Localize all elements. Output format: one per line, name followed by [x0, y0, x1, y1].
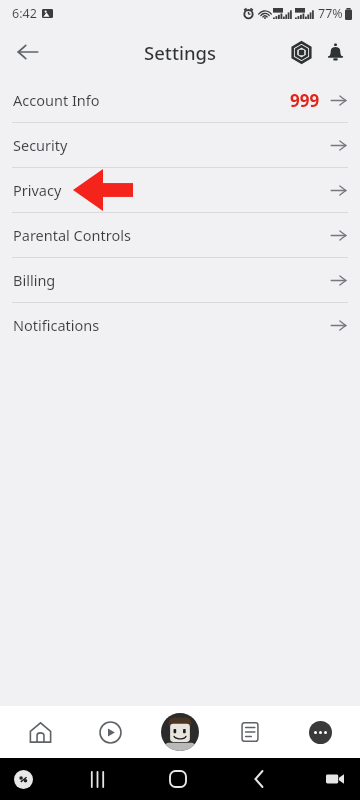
- button[interactable]: Home: [156, 758, 200, 800]
- button[interactable]: Billing: [0, 258, 360, 302]
- button[interactable]: Discover: [80, 706, 140, 758]
- button[interactable]: Avatar: [150, 706, 210, 758]
- button[interactable]: Privacy: [0, 168, 360, 212]
- button[interactable]: Home: [10, 706, 70, 758]
- button[interactable]: Robux: [284, 35, 318, 69]
- button[interactable]: Notifications: [318, 35, 352, 69]
- staticText: 6:42: [12, 5, 37, 22]
- button[interactable]: Chat: [220, 706, 280, 758]
- button[interactable]: Notifications: [0, 303, 360, 347]
- staticText: 999: [290, 89, 320, 112]
- staticText: Notifications: [13, 315, 100, 335]
- button[interactable]: Record screen: [318, 762, 352, 796]
- button[interactable]: Recents: [75, 758, 119, 800]
- staticText: Parental Controls: [13, 225, 131, 245]
- button[interactable]: Game tools: [8, 764, 38, 794]
- button[interactable]: Parental Controls: [0, 213, 360, 257]
- button[interactable]: Back: [237, 758, 281, 800]
- staticText: 77%: [318, 5, 343, 22]
- staticText: Privacy: [13, 180, 62, 200]
- button[interactable]: Back: [8, 32, 48, 72]
- button[interactable]: Security: [0, 123, 360, 167]
- staticText: Account Info: [13, 90, 100, 110]
- staticText: Security: [13, 135, 68, 155]
- button[interactable]: Account Info: [0, 78, 360, 122]
- staticText: Settings: [144, 40, 217, 65]
- button[interactable]: More: [290, 706, 350, 758]
- staticText: Billing: [13, 270, 56, 290]
